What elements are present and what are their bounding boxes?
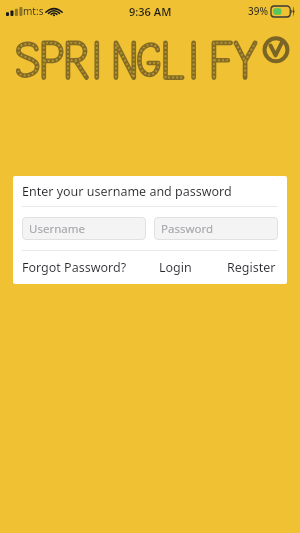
button[interactable]: Login: [157, 252, 194, 283]
staticText: 39%: [248, 4, 268, 18]
button[interactable]: Forgot Password?: [22, 252, 127, 283]
staticText: mt:s: [23, 4, 44, 18]
staticText: Register: [227, 259, 276, 276]
staticText: Username: [29, 221, 85, 237]
staticText: Password: [161, 221, 214, 237]
button[interactable]: Password: [154, 217, 278, 240]
button[interactable]: Register: [225, 252, 278, 283]
staticText: Enter your username and password: [22, 183, 232, 200]
button[interactable]: Username: [22, 217, 146, 240]
staticText: Login: [159, 259, 192, 276]
staticText: Forgot Password?: [22, 259, 127, 276]
staticText: 9:36 AM: [129, 4, 172, 19]
other: Springlify: [0, 30, 300, 86]
